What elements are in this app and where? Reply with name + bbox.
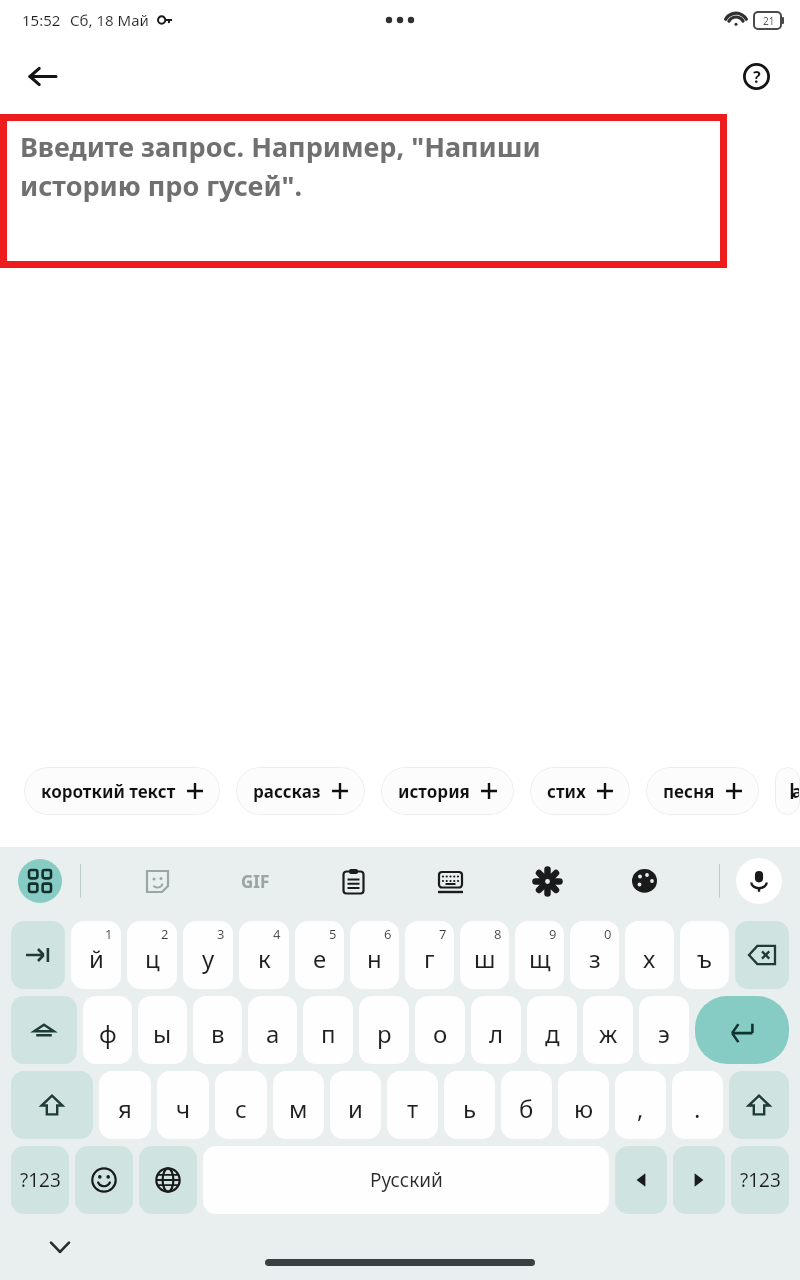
staticText: 8 bbox=[494, 925, 502, 943]
button[interactable]: н bbox=[350, 921, 399, 989]
staticText: ъ bbox=[697, 942, 712, 975]
button[interactable]: р bbox=[359, 996, 409, 1064]
button[interactable]: м bbox=[273, 1071, 324, 1139]
staticText: а bbox=[266, 1017, 280, 1050]
button[interactable]: а bbox=[248, 996, 297, 1064]
button[interactable]: стих bbox=[530, 767, 630, 815]
button[interactable]: щ bbox=[515, 921, 564, 989]
button[interactable]: Hide keyboard bbox=[40, 1227, 80, 1267]
staticText: ч bbox=[176, 1092, 191, 1125]
button[interactable]: с bbox=[215, 1071, 267, 1139]
staticText: GIF bbox=[241, 870, 270, 893]
staticText: м bbox=[289, 1092, 308, 1125]
button[interactable]: анекдот bbox=[775, 767, 800, 815]
staticText: короткий текст bbox=[41, 780, 176, 803]
staticText: б bbox=[519, 1092, 534, 1125]
button[interactable]: у bbox=[183, 921, 233, 989]
staticText: стих bbox=[547, 780, 586, 803]
button[interactable]: ц bbox=[127, 921, 177, 989]
button[interactable]: л bbox=[471, 996, 521, 1064]
staticText: Введите запрос. Например, "Напиши истори… bbox=[20, 128, 541, 204]
staticText: т bbox=[407, 1092, 419, 1125]
staticText: п bbox=[321, 1017, 336, 1050]
button[interactable]: й bbox=[71, 921, 121, 989]
button[interactable]: я bbox=[99, 1071, 151, 1139]
button[interactable]: Toolbox bbox=[18, 859, 62, 903]
staticText: Русский bbox=[370, 1167, 443, 1193]
button[interactable]: Key bbox=[729, 1071, 789, 1139]
button[interactable]: Voice input bbox=[736, 858, 782, 904]
button[interactable]: история bbox=[381, 767, 514, 815]
button[interactable]: д bbox=[527, 996, 577, 1064]
staticText: песня bbox=[663, 780, 715, 803]
button[interactable]: г bbox=[405, 921, 454, 989]
staticText: й bbox=[89, 942, 104, 975]
staticText: х bbox=[643, 942, 656, 975]
staticText: 1 bbox=[105, 925, 113, 943]
button[interactable]: Theme bbox=[622, 859, 666, 903]
staticText: 4 bbox=[273, 925, 281, 943]
button[interactable]: к bbox=[239, 921, 289, 989]
button[interactable]: п bbox=[303, 996, 353, 1064]
button[interactable]: Settings bbox=[525, 859, 569, 903]
staticText: з bbox=[589, 942, 601, 975]
button[interactable]: т bbox=[387, 1071, 438, 1139]
button[interactable]: GIF bbox=[233, 859, 277, 903]
staticText: , bbox=[637, 1092, 644, 1125]
staticText: л bbox=[489, 1017, 504, 1050]
button[interactable]: х bbox=[625, 921, 674, 989]
button[interactable]: Key bbox=[731, 1146, 789, 1214]
staticText: история bbox=[398, 780, 470, 803]
staticText: 3 bbox=[217, 925, 225, 943]
button[interactable]: Key bbox=[673, 1146, 725, 1214]
staticText: 7 bbox=[439, 925, 447, 943]
button[interactable]: ю bbox=[558, 1071, 609, 1139]
button[interactable]: Key bbox=[75, 1146, 133, 1214]
button[interactable]: о bbox=[415, 996, 465, 1064]
button[interactable]: короткий текст bbox=[24, 767, 220, 815]
staticText: 2 bbox=[161, 925, 169, 943]
button[interactable]: . bbox=[672, 1071, 723, 1139]
button[interactable]: и bbox=[330, 1071, 381, 1139]
button[interactable]: ы bbox=[138, 996, 187, 1064]
staticText: ? bbox=[753, 66, 761, 88]
staticText: н bbox=[367, 942, 382, 975]
button[interactable]: Key bbox=[735, 921, 789, 989]
button[interactable]: Key bbox=[139, 1146, 197, 1214]
button[interactable]: ч bbox=[157, 1071, 209, 1139]
button[interactable]: Sticker bbox=[135, 859, 179, 903]
staticText: я bbox=[118, 1092, 132, 1125]
button[interactable]: Key bbox=[11, 1071, 93, 1139]
button[interactable]: б bbox=[501, 1071, 552, 1139]
button[interactable]: ф bbox=[83, 996, 132, 1064]
button[interactable]: в bbox=[193, 996, 242, 1064]
button[interactable]: Key bbox=[11, 1146, 69, 1214]
staticText: 6 bbox=[384, 925, 392, 943]
button[interactable]: ь bbox=[444, 1071, 495, 1139]
staticText: ы bbox=[153, 1017, 172, 1050]
button[interactable]: Key bbox=[11, 921, 65, 989]
staticText: ь bbox=[463, 1092, 477, 1125]
button[interactable]: Back bbox=[18, 52, 66, 100]
button[interactable]: Key bbox=[11, 996, 77, 1064]
button[interactable]: Resize keyboard bbox=[428, 859, 472, 903]
button[interactable]: Help bbox=[732, 52, 780, 100]
button[interactable]: , bbox=[615, 1071, 666, 1139]
button[interactable]: ш bbox=[460, 921, 509, 989]
button[interactable]: песня bbox=[646, 767, 759, 815]
staticText: щ bbox=[529, 942, 551, 975]
button[interactable]: Key bbox=[695, 996, 789, 1064]
button[interactable]: Русский bbox=[203, 1146, 609, 1214]
button[interactable]: ж bbox=[583, 996, 633, 1064]
button[interactable]: з bbox=[570, 921, 619, 989]
button[interactable]: э bbox=[639, 996, 689, 1064]
button[interactable]: ъ bbox=[680, 921, 729, 989]
button[interactable]: е bbox=[295, 921, 344, 989]
staticText: 9 bbox=[549, 925, 557, 943]
staticText: о bbox=[433, 1017, 448, 1050]
button[interactable]: Clipboard bbox=[331, 859, 375, 903]
button[interactable]: рассказ bbox=[236, 767, 365, 815]
staticText: ф bbox=[99, 1017, 117, 1050]
button[interactable]: Key bbox=[615, 1146, 667, 1214]
staticText: р bbox=[377, 1017, 392, 1050]
